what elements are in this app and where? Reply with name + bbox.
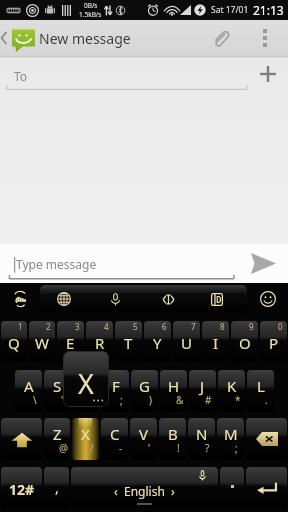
staticText: U — [181, 333, 192, 353]
button[interactable]: Clipboard — [204, 286, 230, 312]
staticText: V — [139, 424, 149, 444]
staticText: Y — [153, 333, 162, 353]
staticText: Z — [53, 424, 62, 444]
staticText: J — [200, 376, 205, 396]
button[interactable]: Move cursor — [153, 286, 179, 312]
button[interactable]: 8 — [202, 321, 229, 363]
staticText: C — [110, 424, 120, 444]
button[interactable]: # — [189, 370, 216, 412]
staticText: / — [90, 441, 94, 455]
staticText: Q — [8, 333, 20, 353]
staticText: E — [66, 333, 75, 353]
button[interactable]: . — [247, 370, 274, 412]
button[interactable]: Navigate up — [0, 20, 39, 56]
staticText: 2 — [46, 321, 51, 332]
staticText: 3 — [75, 321, 80, 332]
staticText: F — [112, 376, 120, 396]
staticText: 12# — [9, 480, 35, 499]
button[interactable]: Language — [51, 286, 77, 312]
staticText: W — [35, 333, 49, 353]
staticText: New message — [39, 29, 131, 48]
staticText: N — [196, 424, 208, 444]
button[interactable]: Attach — [199, 20, 241, 56]
button[interactable]: \ — [15, 370, 42, 412]
button[interactable]: Handwriting — [0, 283, 40, 314]
button[interactable]: " — [44, 370, 71, 412]
button[interactable]: * — [218, 370, 245, 412]
staticText: A — [24, 376, 34, 396]
staticText: English — [124, 483, 165, 499]
staticText: ‹ — [114, 483, 118, 499]
button[interactable]: ! — [159, 418, 186, 460]
staticText: Sat 17/01 — [211, 4, 249, 16]
staticText: 7 — [191, 321, 196, 332]
staticText: ! — [177, 441, 180, 455]
button[interactable]: & — [160, 370, 187, 412]
staticText: \ — [33, 393, 37, 407]
staticText: H — [168, 376, 180, 396]
staticText: 1 — [18, 321, 23, 332]
staticText: - — [119, 441, 123, 455]
staticText: L — [257, 376, 265, 396]
staticText: › — [171, 483, 175, 499]
staticText: 5 — [133, 321, 138, 332]
staticText: R — [95, 333, 105, 353]
button[interactable]: Period — [220, 467, 244, 509]
button[interactable]: Type message — [0, 244, 240, 283]
staticText: P — [269, 333, 279, 353]
staticText: & — [176, 393, 184, 407]
staticText: 1.5kB/s — [79, 10, 102, 19]
button[interactable]: ' — [130, 418, 157, 460]
button[interactable]: ; — [102, 370, 129, 412]
button[interactable]: Symbols — [1, 467, 42, 509]
button[interactable]: To — [0, 58, 248, 91]
button[interactable]: : — [73, 370, 100, 412]
staticText: # — [205, 393, 212, 407]
button[interactable]: Shift — [1, 418, 42, 460]
staticText: I — [213, 333, 219, 353]
staticText: T — [124, 333, 133, 353]
staticText: * — [235, 393, 241, 407]
button[interactable]: ) — [131, 370, 158, 412]
button[interactable]: Add recipient — [248, 58, 288, 91]
staticText: 9 — [249, 321, 254, 332]
button[interactable]: Enter — [246, 467, 287, 509]
button[interactable]: 4 — [86, 321, 113, 363]
button[interactable]: Voice input — [102, 286, 128, 312]
button[interactable]: Space — [71, 467, 218, 509]
staticText: K — [227, 376, 237, 396]
staticText: , — [55, 478, 59, 497]
staticText: 21:13 — [253, 2, 284, 18]
button[interactable]: Send — [240, 244, 288, 283]
button[interactable]: ; — [217, 418, 244, 460]
button[interactable]: / — [72, 418, 99, 460]
button[interactable]: 9 — [231, 321, 258, 363]
button[interactable]: Backspace — [246, 418, 287, 460]
button[interactable]: 7 — [173, 321, 200, 363]
button[interactable]: 0 — [260, 321, 287, 363]
staticText: 6 — [162, 321, 167, 332]
staticText: Type message — [16, 256, 97, 272]
button[interactable]: ? — [188, 418, 215, 460]
button[interactable]: 6 — [144, 321, 171, 363]
button[interactable]: 3 — [57, 321, 84, 363]
staticText: 0 — [278, 321, 283, 332]
staticText: : — [91, 393, 94, 407]
staticText: 4 — [104, 321, 109, 332]
button[interactable]: 5 — [115, 321, 142, 363]
staticText: 0B/s — [84, 1, 98, 10]
staticText: ; — [235, 441, 238, 455]
staticText: D — [81, 376, 92, 396]
button[interactable]: 2 — [29, 321, 55, 363]
staticText: To — [14, 68, 28, 84]
staticText: ; — [120, 393, 123, 407]
staticText: G — [139, 376, 150, 396]
button[interactable]: More options — [241, 20, 288, 56]
staticText: ? — [205, 441, 210, 455]
button[interactable]: Comma — [44, 467, 69, 509]
button[interactable]: 1 — [1, 321, 27, 363]
button[interactable]: - — [101, 418, 128, 460]
button[interactable]: Emoji — [247, 283, 288, 314]
button[interactable]: @ — [44, 418, 70, 460]
staticText: B — [168, 424, 178, 444]
